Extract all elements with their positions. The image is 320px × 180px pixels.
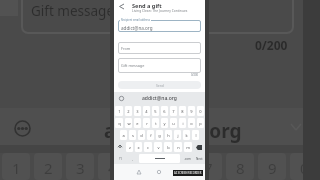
button[interactable]: s [129, 130, 136, 140]
button[interactable]: d [138, 130, 145, 140]
staticText: 7 [172, 109, 175, 114]
staticText: .com [184, 157, 191, 161]
staticText: l [195, 133, 197, 138]
button[interactable]: u [170, 118, 177, 128]
button[interactable]: h [165, 130, 172, 140]
staticText: t [155, 121, 157, 126]
button[interactable]: j [174, 130, 181, 140]
staticText: 1 [118, 109, 121, 114]
staticText: v [157, 145, 160, 150]
button[interactable]: t [152, 118, 159, 128]
staticText: 0/200 [255, 37, 288, 53]
staticText: u [172, 121, 175, 126]
staticText: ?1 [119, 157, 123, 161]
staticText: n [177, 145, 180, 150]
button[interactable]: Backspace [193, 141, 205, 153]
staticText: o [190, 121, 193, 126]
button[interactable]: o [188, 118, 195, 128]
staticText: g [158, 133, 161, 138]
staticText: x [137, 145, 140, 150]
staticText: 6 [172, 158, 181, 178]
button[interactable]: w [125, 118, 132, 128]
button[interactable]: Back [116, 1, 127, 12]
button[interactable]: g [156, 130, 163, 140]
staticText: z [129, 145, 131, 150]
staticText: Living Clean: The Journey Continues [132, 8, 188, 12]
staticText: c [147, 145, 149, 150]
button[interactable] [118, 20, 201, 32]
button[interactable]: 7 [170, 106, 177, 116]
staticText: b [167, 145, 170, 150]
staticText: 5 [140, 158, 149, 178]
button[interactable]: 8 [179, 106, 186, 116]
button[interactable]: 1 [115, 106, 123, 116]
staticText: w [127, 121, 131, 126]
staticText: 8 [181, 109, 184, 114]
staticText: m [186, 145, 190, 150]
button[interactable]: Home [155, 168, 163, 176]
button[interactable]: 5 [152, 106, 159, 116]
staticText: 2 [44, 158, 53, 178]
button[interactable]: a [120, 130, 127, 140]
staticText: s [132, 133, 134, 138]
staticText: q [118, 121, 121, 126]
button[interactable]: Shift [114, 141, 125, 153]
staticText: Send [156, 83, 164, 88]
staticText: 3 [136, 109, 139, 114]
button[interactable]: n [174, 142, 182, 152]
button[interactable] [118, 58, 201, 73]
button[interactable]: e [134, 118, 141, 128]
button[interactable]: 4 [143, 106, 150, 116]
staticText: addict@na.org [104, 118, 242, 144]
staticText: 2 [127, 109, 130, 114]
button[interactable] [118, 42, 201, 54]
staticText: 3 [76, 158, 85, 178]
staticText: Gift message [121, 63, 145, 68]
staticText: j [177, 133, 179, 138]
staticText: , [132, 157, 133, 161]
button[interactable]: p [197, 118, 204, 128]
staticText: r [146, 121, 148, 126]
staticText: 9 [268, 158, 277, 178]
button[interactable]: Send [118, 81, 201, 89]
button[interactable]: y [161, 118, 168, 128]
button[interactable]: 6 [161, 106, 168, 116]
button[interactable]: 2 [125, 106, 132, 116]
button[interactable]: 9 [188, 106, 195, 116]
button[interactable]: c [144, 142, 152, 152]
staticText: y [163, 121, 166, 126]
staticText: a [122, 133, 125, 138]
button[interactable]: Next [195, 154, 204, 163]
staticText: Next [196, 157, 203, 161]
staticText: AZ SCREEN RECORDER [174, 171, 202, 175]
button[interactable]: 0 [197, 106, 204, 116]
button[interactable]: f [147, 130, 154, 140]
button[interactable]: ?1 [115, 154, 126, 163]
button[interactable]: b [164, 142, 172, 152]
button[interactable]: 3 [134, 106, 141, 116]
staticText: 9 [190, 109, 193, 114]
button[interactable]: Back [135, 168, 143, 176]
button[interactable]: i [179, 118, 186, 128]
staticText: Recipient email address [121, 18, 150, 22]
button[interactable]: r [143, 118, 150, 128]
staticText: 4 [145, 109, 148, 114]
button[interactable]: .com [182, 154, 193, 163]
button[interactable]: , [128, 154, 137, 163]
button[interactable]: l [192, 130, 199, 140]
button[interactable]: x [135, 142, 142, 152]
button[interactable]: m [184, 142, 192, 152]
staticText: p [199, 121, 202, 126]
staticText: Gift message [31, 2, 114, 20]
button[interactable] [139, 154, 180, 163]
staticText: h [167, 133, 170, 138]
staticText: addict@na.org [142, 95, 177, 102]
staticText: 7 [204, 158, 213, 178]
staticText: 0/200 [191, 73, 198, 77]
button[interactable]: q [115, 118, 123, 128]
staticText: i [182, 121, 184, 126]
button[interactable]: v [154, 142, 162, 152]
staticText: f [150, 133, 152, 138]
button[interactable]: z [126, 142, 133, 152]
button[interactable]: k [183, 130, 190, 140]
